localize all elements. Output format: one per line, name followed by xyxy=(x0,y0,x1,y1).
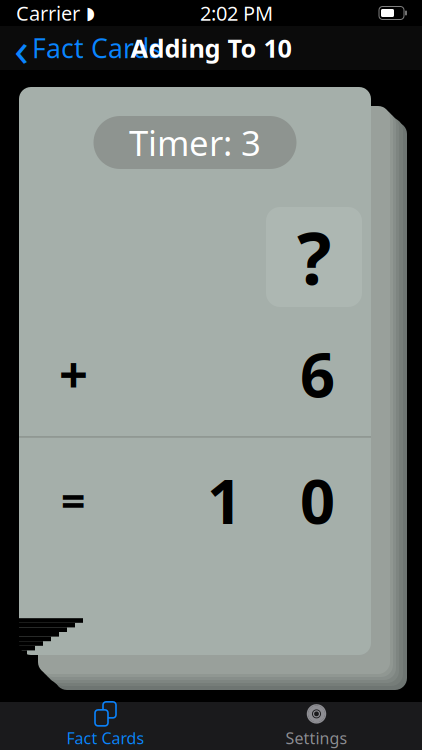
staticText: Fact Cards xyxy=(66,727,144,749)
staticText: 0 xyxy=(300,459,335,541)
staticText: 6 xyxy=(300,333,335,414)
button[interactable]: Fact Cards xyxy=(0,702,211,750)
staticText: ◗ xyxy=(80,3,95,23)
staticText: Adding To 10 xyxy=(130,31,291,65)
staticText: Timer: 3 xyxy=(129,119,261,165)
staticText: Fact Cards xyxy=(32,30,162,66)
staticText: Carrier xyxy=(16,0,80,26)
staticText: Settings xyxy=(285,727,347,749)
staticText: 1 xyxy=(207,459,242,541)
staticText: ‹ xyxy=(14,16,29,80)
staticText: + xyxy=(59,340,88,407)
staticText: 2:02 PM xyxy=(200,0,273,26)
button[interactable]: Settings xyxy=(211,702,422,750)
staticText: = xyxy=(61,472,85,528)
staticText: ? xyxy=(297,209,331,305)
button[interactable]: ‹ xyxy=(0,26,172,70)
